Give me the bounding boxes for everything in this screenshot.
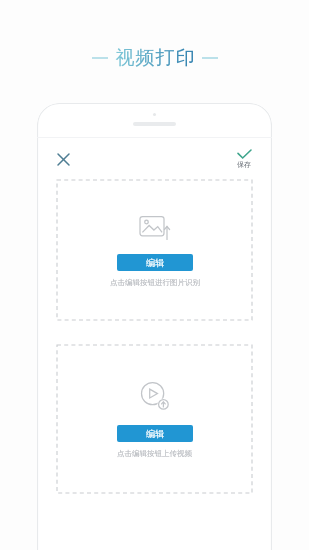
staticText: 点击编辑按钮进行图片识别 [110, 278, 200, 287]
button[interactable]: 编辑 [57, 345, 252, 493]
button[interactable]: Close [52, 148, 74, 170]
button[interactable]: 编辑 [117, 425, 193, 442]
staticText: 点击编辑按钮上传视频 [117, 449, 192, 458]
button[interactable]: 保存 [231, 150, 257, 169]
staticText: 保存 [237, 160, 251, 169]
staticText: 视频打印 [115, 46, 195, 70]
button[interactable]: 编辑 [117, 254, 193, 271]
staticText: 编辑 [146, 257, 164, 268]
button[interactable]: 编辑 [57, 180, 252, 320]
staticText: 编辑 [146, 428, 164, 439]
